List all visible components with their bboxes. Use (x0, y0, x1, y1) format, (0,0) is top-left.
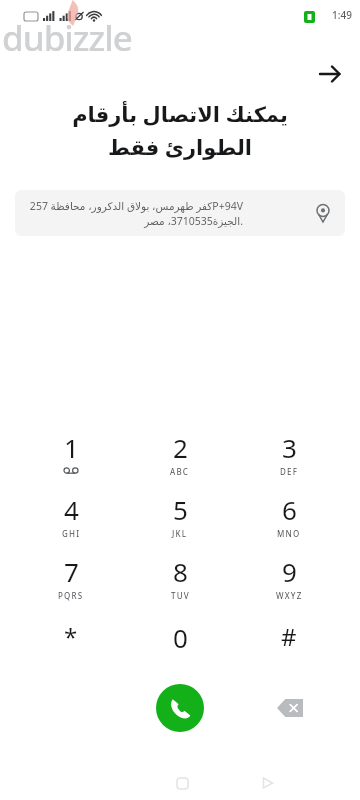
staticText: JKL (172, 528, 188, 539)
staticText: يمكنك الاتصال بأرقام الطوارئ فقط (28, 100, 332, 161)
staticText: * (64, 620, 78, 653)
button[interactable]: كفر طهرمس، بولاق الدكرور، محافظة 257P+94… (15, 190, 345, 236)
staticText: 3 (282, 430, 297, 465)
button[interactable]: Call (156, 684, 204, 732)
button[interactable]: 7 (31, 554, 111, 606)
staticText: MNO (277, 528, 301, 539)
button[interactable]: 2 (140, 430, 220, 482)
staticText: WXYZ (276, 590, 303, 601)
staticText: 5 (173, 492, 188, 527)
button[interactable]: 1 (31, 430, 111, 482)
button[interactable]: 3 (249, 430, 329, 482)
button[interactable]: # (249, 620, 329, 672)
staticText: 4 (64, 492, 79, 527)
staticText: 7 (64, 554, 79, 589)
button[interactable]: 9 (249, 554, 329, 606)
button[interactable]: 0 (140, 620, 220, 672)
staticText: كفر طهرمس، بولاق الدكرور، محافظة 257P+94… (29, 199, 243, 228)
staticText: 6 (282, 492, 297, 527)
button[interactable]: Backspace (268, 690, 312, 726)
button[interactable]: Next (312, 56, 348, 92)
staticText: GHI (62, 528, 81, 539)
staticText: DEF (280, 466, 299, 477)
staticText: 9 (282, 554, 297, 589)
staticText: PQRS (58, 590, 84, 601)
staticText: TUV (171, 590, 190, 601)
staticText: dubizzle (2, 14, 132, 62)
button[interactable]: 8 (140, 554, 220, 606)
button[interactable]: Recents (165, 766, 199, 800)
button[interactable]: * (31, 620, 111, 672)
staticText: 0 (173, 620, 188, 655)
button[interactable]: Back (251, 766, 285, 800)
staticText: 1:49 (332, 8, 352, 22)
staticText: 1 (64, 430, 79, 465)
staticText: 2 (173, 430, 188, 465)
button[interactable]: 6 (249, 492, 329, 544)
button[interactable]: 4 (31, 492, 111, 544)
staticText: # (281, 620, 297, 653)
staticText: 8 (173, 554, 188, 589)
staticText: ABC (170, 466, 190, 477)
button[interactable]: 5 (140, 492, 220, 544)
